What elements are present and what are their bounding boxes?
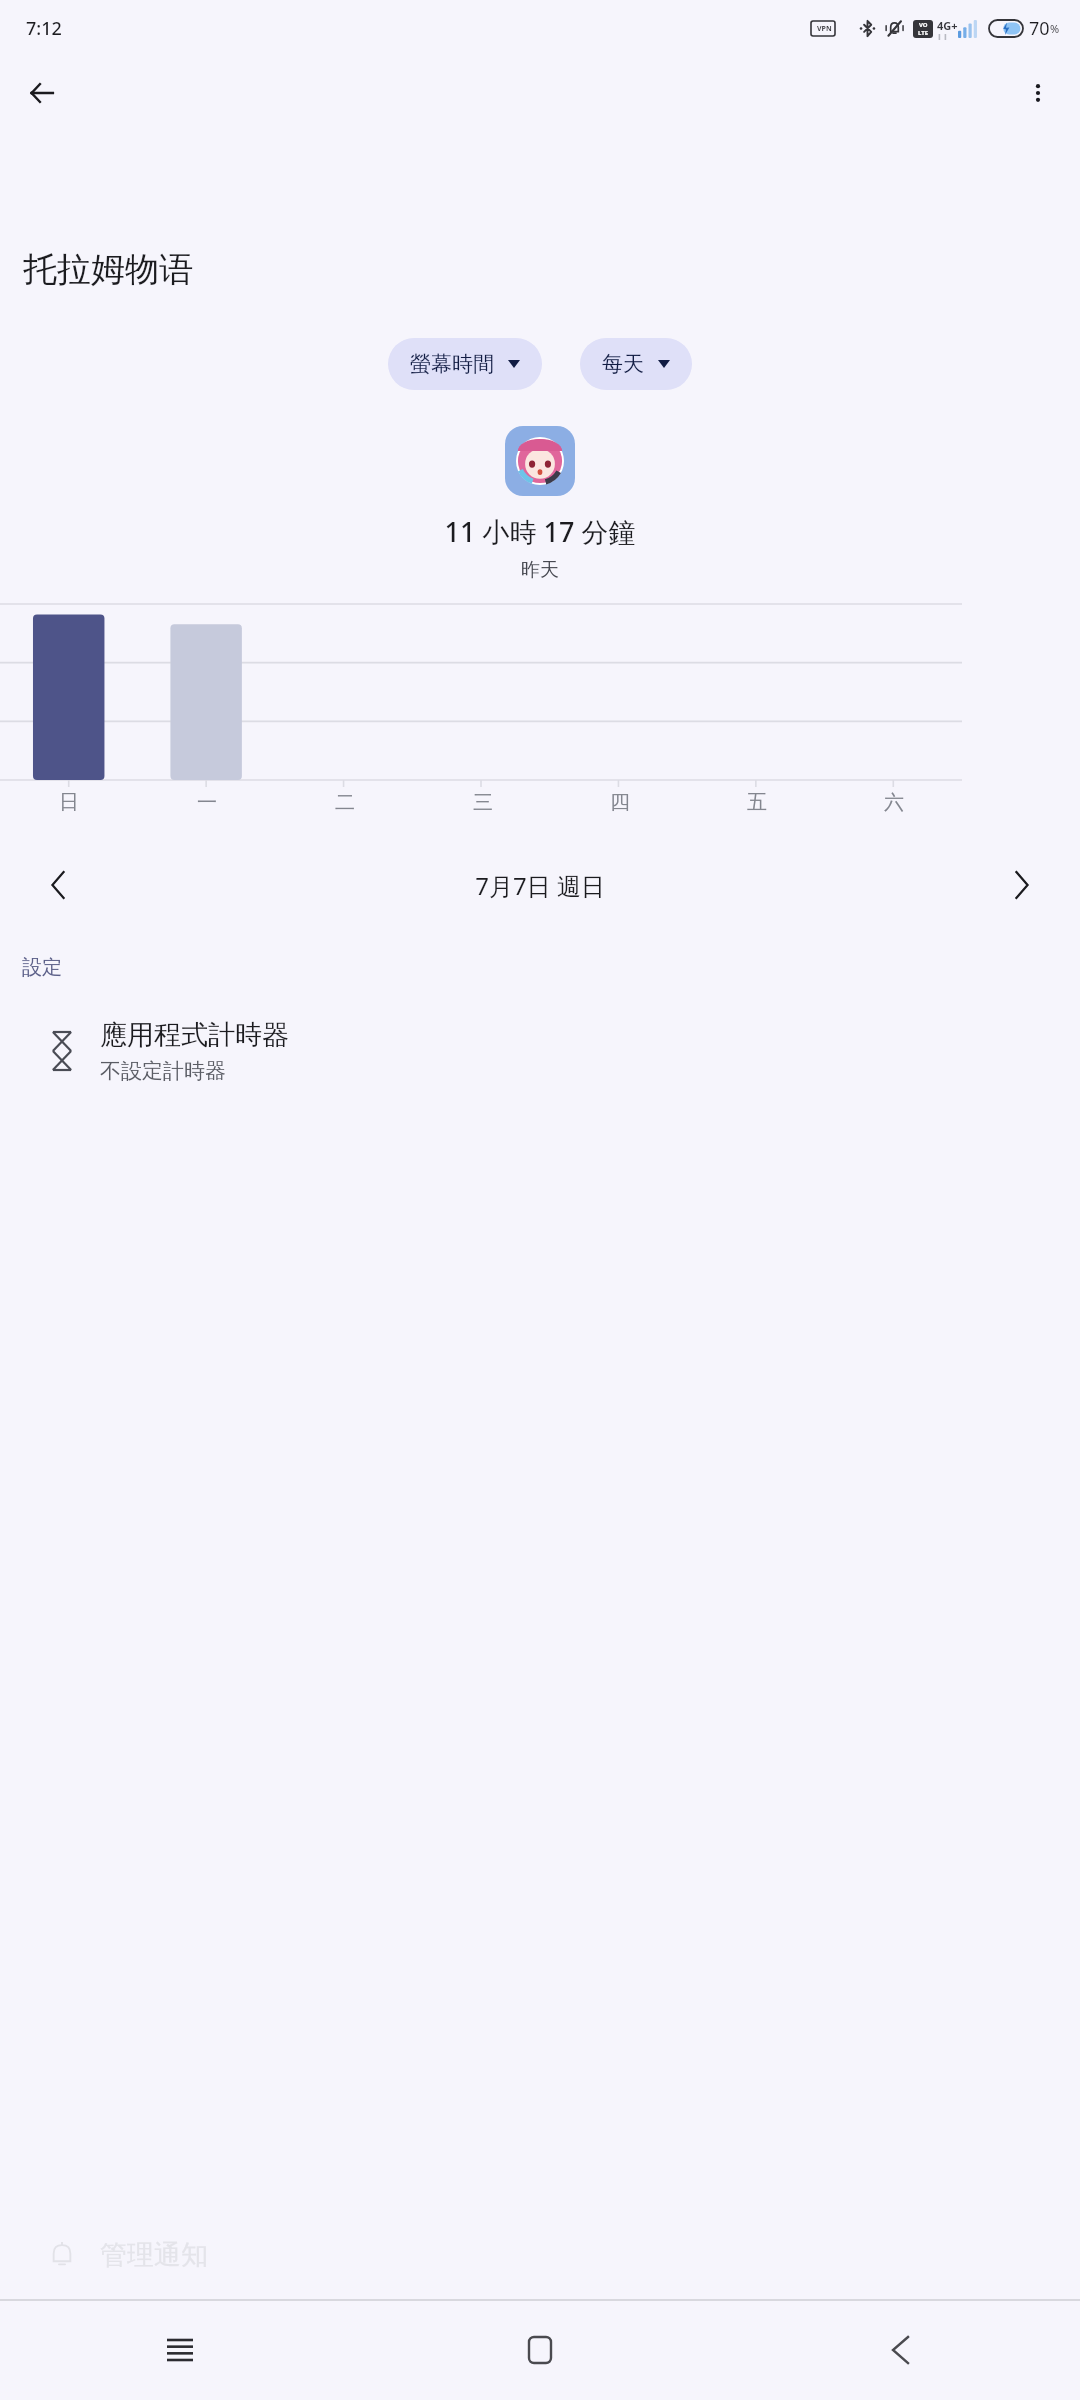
staticText: 管理通知 bbox=[100, 2238, 208, 2272]
staticText: 不設定計時器 bbox=[100, 1058, 226, 1084]
staticText: LTE bbox=[918, 29, 929, 37]
staticText: 一 bbox=[197, 790, 217, 815]
staticText: 螢幕時間 bbox=[410, 351, 494, 377]
staticText: 昨天 bbox=[0, 558, 1080, 582]
staticText: 應用程式計時器 bbox=[100, 1018, 289, 1052]
staticText: 每天 bbox=[602, 351, 644, 377]
button[interactable]: Next day bbox=[994, 857, 1050, 913]
button[interactable]: Home bbox=[360, 2300, 720, 2400]
button[interactable]: Back bbox=[16, 67, 68, 119]
button[interactable]: Recents bbox=[0, 2300, 360, 2400]
button[interactable]: 管理通知 bbox=[0, 2210, 1080, 2300]
staticText: 4G+ bbox=[937, 18, 958, 33]
staticText: 日 bbox=[59, 790, 79, 815]
button[interactable]: 螢幕時間 bbox=[388, 338, 542, 390]
staticText: 7月7日 週日 bbox=[86, 869, 994, 902]
staticText: 四 bbox=[610, 790, 630, 815]
button[interactable]: Previous day bbox=[30, 857, 86, 913]
button[interactable]: 每天 bbox=[580, 338, 692, 390]
staticText: VPN bbox=[817, 24, 832, 34]
staticText: % bbox=[1050, 21, 1060, 36]
staticText: 托拉姆物语 bbox=[23, 248, 193, 291]
button[interactable]: More options bbox=[1012, 67, 1064, 119]
button[interactable]: 應用程式計時器 bbox=[0, 1010, 1080, 1092]
staticText: 70 bbox=[1029, 16, 1050, 41]
staticText: 六 bbox=[884, 790, 904, 815]
staticText: 三 bbox=[473, 790, 493, 815]
staticText: 五 bbox=[747, 790, 767, 815]
staticText: 7:12 bbox=[26, 16, 62, 41]
button[interactable]: Back bbox=[720, 2300, 1080, 2400]
staticText: 二 bbox=[335, 790, 355, 815]
staticText: VO bbox=[919, 21, 928, 29]
staticText: 設定 bbox=[22, 955, 62, 980]
staticText: 11 小時 17 分鐘 bbox=[0, 513, 1080, 550]
